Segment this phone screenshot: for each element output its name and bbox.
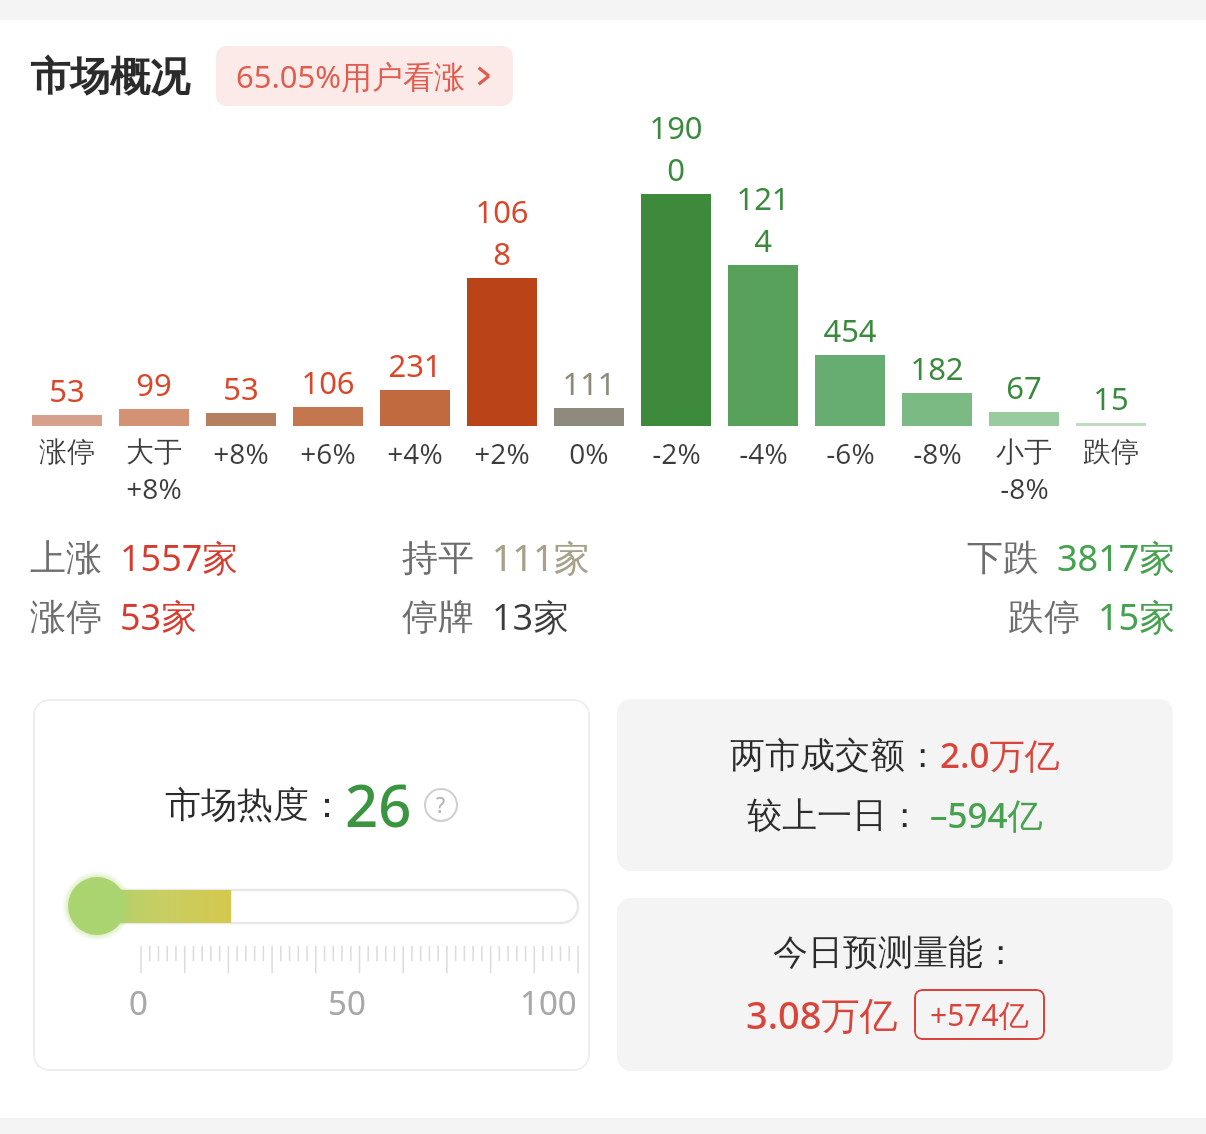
button[interactable]: +574亿 bbox=[914, 989, 1045, 1040]
staticText: 涨停 bbox=[30, 594, 102, 639]
staticText: 跌停 bbox=[1083, 434, 1139, 469]
staticText: +574亿 bbox=[930, 994, 1029, 1035]
staticText: 15 bbox=[1093, 377, 1129, 419]
staticText: 15家 bbox=[1098, 592, 1176, 641]
staticText: -6% bbox=[826, 434, 875, 472]
staticText: 50 bbox=[328, 980, 366, 1025]
staticText: 454 bbox=[823, 309, 877, 351]
staticText: 111 bbox=[562, 362, 616, 404]
staticText: 两市成交额： bbox=[730, 733, 940, 777]
staticText: +2% bbox=[474, 434, 530, 472]
staticText: 106 bbox=[301, 361, 355, 403]
staticText: 今日预测量能： bbox=[773, 930, 1018, 974]
staticText: 3.08万亿 bbox=[746, 988, 898, 1040]
staticText: 下跌 bbox=[967, 535, 1039, 580]
staticText: -4% bbox=[739, 434, 788, 472]
staticText: 较上一日： bbox=[747, 793, 922, 837]
staticText: –594亿 bbox=[930, 791, 1043, 839]
staticText: 99 bbox=[136, 363, 172, 405]
staticText: 53 bbox=[223, 367, 259, 409]
staticText: 26 bbox=[345, 765, 412, 844]
staticText: 涨停 bbox=[39, 434, 95, 469]
staticText: 65.05%用户看涨 bbox=[236, 55, 465, 97]
staticText: 2.0万亿 bbox=[940, 731, 1060, 779]
staticText: 100 bbox=[520, 980, 577, 1025]
staticText: 上涨 bbox=[30, 535, 102, 580]
button[interactable]: 65.05%用户看涨 bbox=[216, 46, 513, 106]
staticText: 13家 bbox=[492, 592, 570, 641]
staticText: 231 bbox=[388, 344, 442, 386]
staticText: -8% bbox=[913, 434, 962, 472]
staticText: 111家 bbox=[492, 533, 590, 582]
staticText: 停牌 bbox=[402, 594, 474, 639]
staticText: ? bbox=[436, 791, 446, 820]
staticText: 1068 bbox=[467, 190, 537, 274]
staticText: 跌停 bbox=[1008, 594, 1080, 639]
staticText: 1557家 bbox=[120, 533, 239, 582]
staticText: +8% bbox=[213, 434, 269, 472]
staticText: 1900 bbox=[641, 106, 711, 190]
staticText: 市场热度： bbox=[165, 782, 345, 827]
staticText: 182 bbox=[910, 347, 964, 389]
staticText: +6% bbox=[300, 434, 356, 472]
staticText: 3817家 bbox=[1057, 533, 1176, 582]
staticText: 市场概况 bbox=[30, 51, 190, 101]
button[interactable]: 两市成交额： bbox=[617, 699, 1173, 871]
button[interactable]: 市场热度： bbox=[33, 699, 590, 1071]
staticText: -2% bbox=[652, 434, 701, 472]
staticText: 53 bbox=[49, 369, 85, 411]
staticText: 0% bbox=[569, 434, 609, 472]
staticText: 0 bbox=[129, 980, 148, 1025]
staticText: +4% bbox=[387, 434, 443, 472]
staticText: 1214 bbox=[728, 177, 798, 261]
staticText: 53家 bbox=[120, 592, 198, 641]
button[interactable]: 帮助说明 bbox=[424, 788, 458, 822]
staticText: 67 bbox=[1006, 366, 1042, 408]
staticText: +8% bbox=[126, 469, 182, 507]
staticText: 小于 bbox=[996, 434, 1052, 469]
staticText: 大于 bbox=[126, 434, 182, 469]
button[interactable]: 今日预测量能： bbox=[617, 898, 1173, 1071]
staticText: -8% bbox=[1000, 469, 1049, 507]
staticText: 持平 bbox=[402, 535, 474, 580]
